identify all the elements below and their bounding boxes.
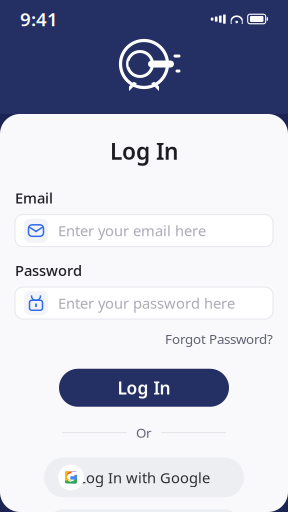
staticText: Password (15, 261, 82, 280)
staticText: Enter your password here (58, 293, 235, 313)
staticText: Or (136, 424, 152, 441)
staticText: Enter your email here (58, 221, 206, 240)
staticText: Log In (110, 136, 178, 166)
staticText: Forgot Password? (165, 330, 273, 348)
button[interactable]: Log In with Google (44, 457, 244, 497)
button[interactable]: Log In with Apple (44, 509, 244, 512)
staticText: Email (15, 188, 53, 208)
button[interactable]: Enter your password here (15, 287, 273, 319)
staticText: 9:41 (20, 7, 58, 31)
button[interactable]: Enter your email here (15, 215, 273, 247)
button[interactable]: Log In (59, 369, 229, 407)
button[interactable]: Forgot Password? (165, 327, 273, 351)
staticText: Log In with Google (78, 468, 210, 487)
staticText: Log In (117, 376, 170, 399)
